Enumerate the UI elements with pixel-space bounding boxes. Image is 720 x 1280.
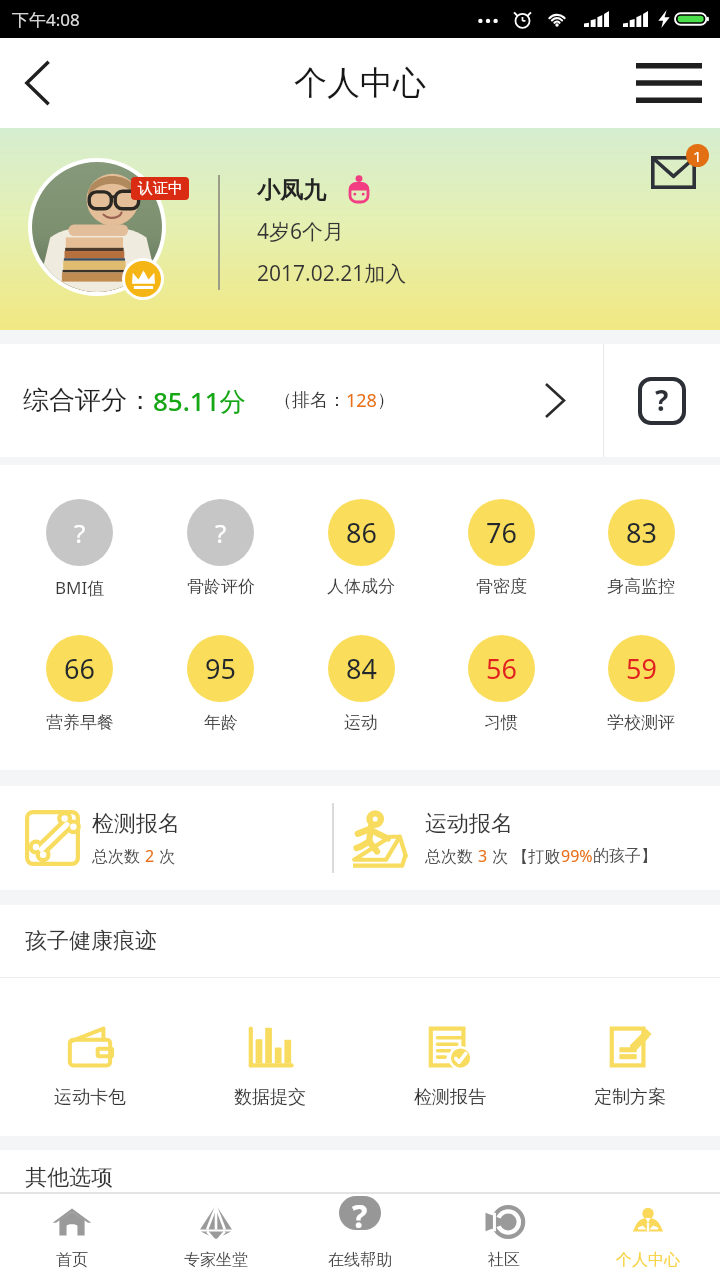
staticText: 86 (346, 514, 377, 551)
staticText: 95 (205, 650, 236, 687)
button[interactable]: 综合评分： (0, 344, 603, 457)
button[interactable]: 首页 (0, 1194, 144, 1280)
staticText: 社区 (488, 1250, 520, 1270)
button[interactable]: 检测报名 (0, 786, 332, 890)
staticText: 学校测评 (607, 712, 675, 733)
staticText: 骨龄评价 (187, 576, 255, 597)
button[interactable]: 运动报名 (334, 786, 720, 890)
staticText: 个人中心 (616, 1250, 680, 1270)
button[interactable]: 运动卡包 (0, 978, 180, 1136)
staticText: 次 【打败 (488, 845, 561, 867)
button[interactable]: 66 (9, 635, 150, 733)
staticText: 数据提交 (234, 1086, 306, 1109)
staticText: 运动 (344, 712, 378, 733)
staticText: 检测报名 (92, 810, 180, 838)
staticText: 个人中心 (294, 62, 426, 104)
button[interactable]: Avatar (32, 162, 162, 292)
button[interactable]: 95 (150, 635, 291, 733)
staticText: 首页 (56, 1250, 88, 1270)
staticText: BMI值 (55, 576, 105, 599)
staticText: 运动报名 (425, 810, 513, 838)
staticText: 4岁6个月 (257, 217, 345, 246)
button[interactable]: Help (604, 344, 720, 457)
button[interactable]: 83 (571, 499, 711, 597)
staticText: 检测报告 (414, 1086, 486, 1109)
staticText: 年龄 (204, 712, 238, 733)
staticText: 2 (145, 845, 155, 867)
button[interactable]: Menu (632, 46, 706, 120)
button[interactable]: Messages (640, 138, 712, 210)
staticText: 66 (64, 650, 95, 687)
button[interactable]: Back (4, 49, 72, 117)
staticText: 59 (626, 650, 657, 687)
staticText: 85.11分 (153, 383, 246, 419)
staticText: 总次数 (425, 845, 478, 867)
staticText: ） (377, 389, 395, 412)
staticText: 综合评分： (23, 384, 153, 417)
button[interactable]: 定制方案 (540, 978, 720, 1136)
staticText: 运动卡包 (54, 1086, 126, 1109)
staticText: 2017.02.21加入 (257, 259, 407, 288)
button[interactable]: 数据提交 (180, 978, 360, 1136)
staticText: 83 (626, 514, 657, 551)
button[interactable]: 个人中心 (576, 1194, 720, 1280)
button[interactable]: 76 (431, 499, 571, 597)
button[interactable]: 检测报告 (360, 978, 540, 1136)
staticText: 的孩子】 (593, 846, 657, 866)
staticText: 人体成分 (327, 576, 395, 597)
staticText: ? (74, 515, 86, 550)
staticText: 其他选项 (25, 1164, 113, 1192)
button[interactable]: 59 (571, 635, 711, 733)
staticText: ? (215, 515, 227, 550)
staticText: 习惯 (484, 712, 518, 733)
staticText: （排名： (274, 389, 346, 412)
button[interactable]: 专家坐堂 (144, 1194, 288, 1280)
staticText: ? (352, 1196, 368, 1228)
staticText: 次 (155, 845, 176, 867)
staticText: 1 (693, 146, 702, 166)
staticText: 在线帮助 (328, 1250, 392, 1270)
button[interactable]: ? (288, 1194, 432, 1280)
staticText: 3 (478, 845, 488, 867)
button[interactable]: ? (9, 499, 150, 599)
staticText: 营养早餐 (46, 712, 114, 733)
staticText: 84 (346, 650, 377, 687)
staticText: 骨密度 (476, 576, 527, 597)
staticText: 孩子健康痕迹 (25, 927, 157, 955)
button[interactable]: 86 (291, 499, 431, 597)
button[interactable]: 认证中 (131, 177, 189, 200)
staticText: 身高监控 (607, 576, 675, 597)
button[interactable]: 84 (291, 635, 431, 733)
button[interactable]: ? (150, 499, 291, 597)
staticText: 99% (561, 845, 593, 867)
staticText: 认证中 (138, 179, 183, 198)
button[interactable]: 社区 (432, 1194, 576, 1280)
staticText: 56 (486, 650, 517, 687)
staticText: ? (655, 381, 669, 419)
staticText: 小凤九 (257, 176, 326, 205)
button[interactable]: 56 (431, 635, 571, 733)
staticText: 定制方案 (594, 1086, 666, 1109)
staticText: 总次数 (92, 845, 145, 867)
staticText: 专家坐堂 (184, 1250, 248, 1270)
staticText: 76 (486, 514, 517, 551)
staticText: 下午4:08 (12, 8, 80, 31)
staticText: 128 (346, 388, 377, 413)
